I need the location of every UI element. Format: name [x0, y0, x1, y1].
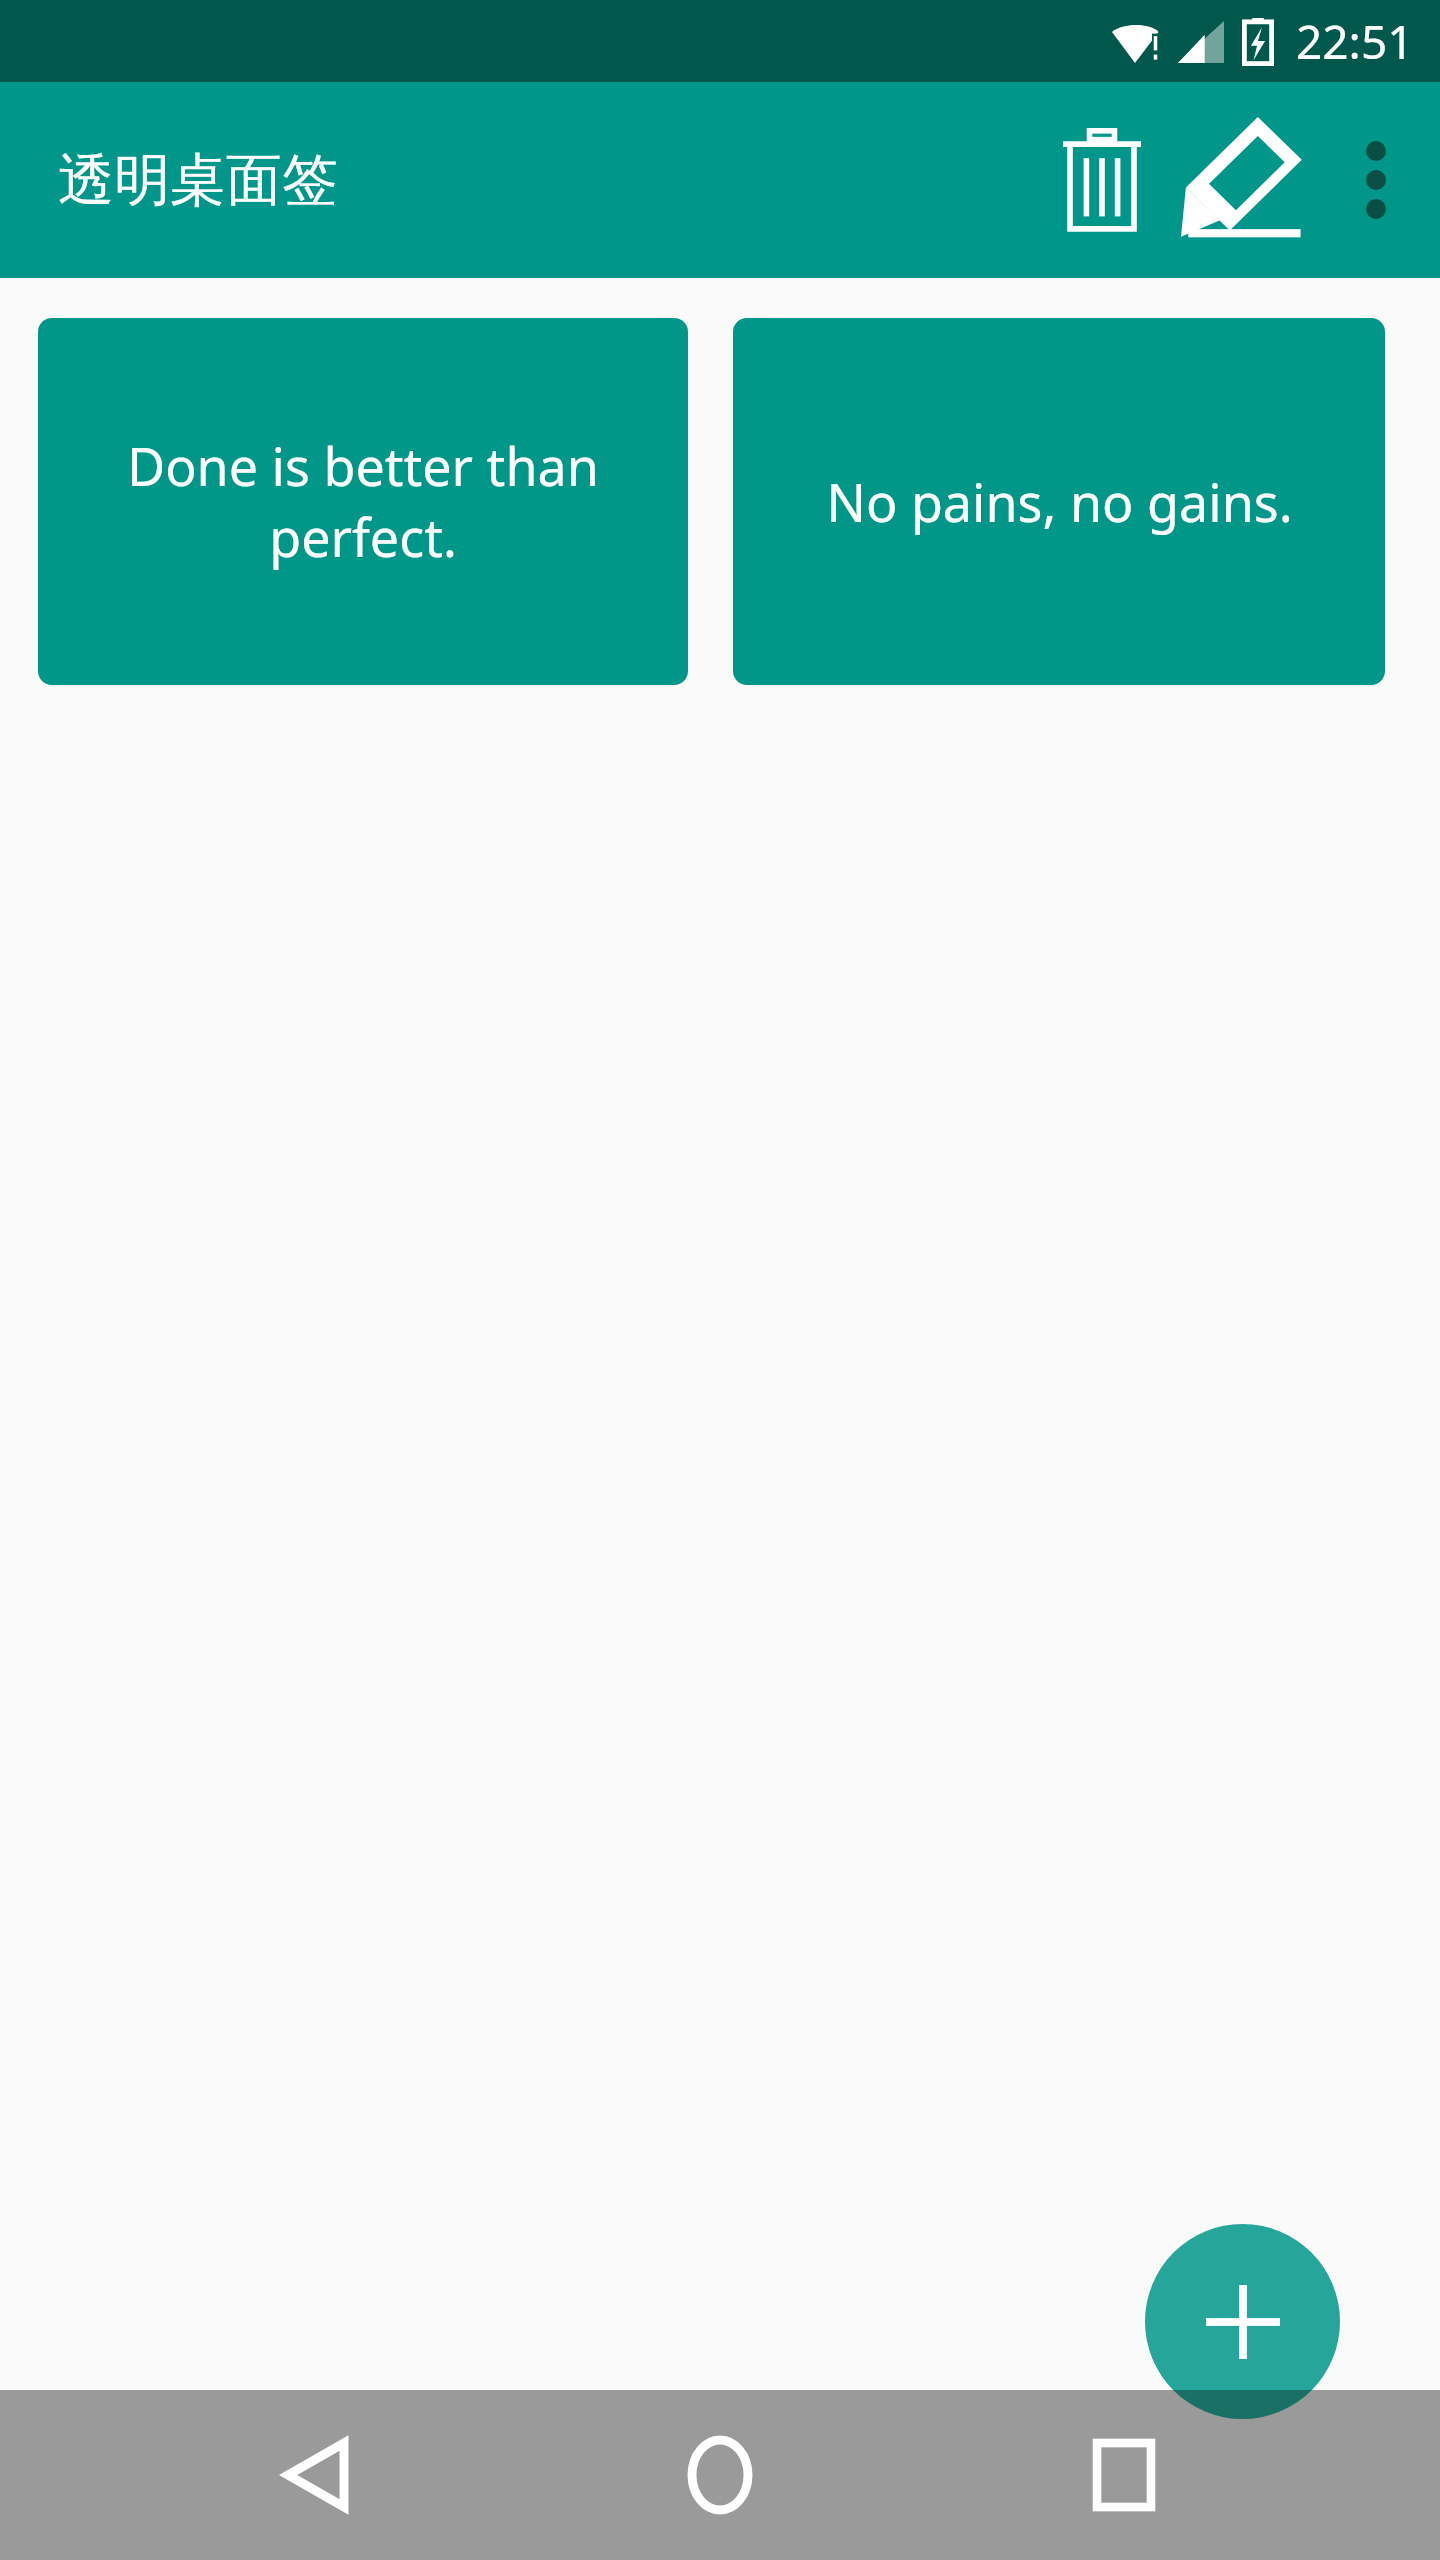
staticText: Done is better than perfect. — [74, 430, 652, 573]
staticText: No pains, no gains. — [826, 466, 1293, 537]
button[interactable]: No pains, no gains. — [733, 318, 1385, 685]
button[interactable]: Edit — [1172, 110, 1312, 250]
button[interactable]: Back — [236, 2395, 396, 2555]
button[interactable]: More options — [1312, 110, 1440, 250]
button[interactable]: Recent apps — [1044, 2395, 1204, 2555]
staticText: 透明桌面签 — [58, 145, 338, 216]
button[interactable]: Done is better than perfect. — [38, 318, 688, 685]
button[interactable]: Home — [640, 2395, 800, 2555]
button[interactable]: Delete — [1032, 110, 1172, 250]
button[interactable]: Add note — [1145, 2224, 1340, 2419]
staticText: 22:51 — [1296, 10, 1414, 73]
